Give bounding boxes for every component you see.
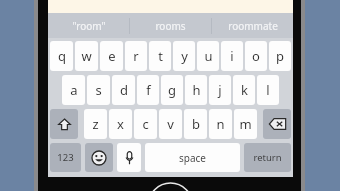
button[interactable]: k — [233, 75, 255, 105]
staticText: p — [276, 47, 284, 65]
button[interactable]: w — [75, 41, 98, 71]
button[interactable]: Emoji — [85, 143, 113, 172]
staticText: j — [218, 81, 222, 99]
button[interactable]: v — [159, 109, 182, 139]
button[interactable]: d — [112, 75, 135, 105]
staticText: g — [168, 81, 176, 99]
staticText: roommate — [228, 19, 278, 33]
button[interactable]: h — [185, 75, 207, 105]
staticText: a — [70, 81, 78, 99]
staticText: r — [133, 47, 139, 65]
button[interactable]: roommate — [212, 13, 293, 38]
button[interactable]: a — [62, 75, 85, 105]
button[interactable]: Backspace — [263, 109, 291, 139]
button[interactable]: Dictation — [117, 143, 141, 172]
staticText: m — [239, 115, 252, 133]
button[interactable]: rooms — [130, 13, 211, 38]
staticText: h — [192, 81, 201, 99]
staticText: y — [181, 47, 188, 65]
staticText: c — [142, 115, 149, 133]
button[interactable]: p — [269, 41, 291, 71]
staticText: return — [253, 151, 282, 164]
staticText: v — [167, 115, 174, 133]
button[interactable]: space — [145, 143, 240, 172]
button[interactable]: f — [137, 75, 159, 105]
button[interactable]: e — [100, 41, 123, 71]
button[interactable]: 123 — [50, 143, 81, 172]
button[interactable]: i — [221, 41, 243, 71]
staticText: rooms — [155, 19, 186, 33]
button[interactable]: g — [161, 75, 183, 105]
button[interactable]: o — [245, 41, 267, 71]
button[interactable]: y — [173, 41, 195, 71]
button[interactable]: m — [234, 109, 257, 139]
staticText: space — [179, 151, 206, 165]
button[interactable]: return — [244, 143, 291, 172]
button[interactable]: z — [84, 109, 107, 139]
staticText: s — [95, 81, 102, 99]
staticText: i — [230, 47, 234, 65]
button[interactable]: c — [134, 109, 157, 139]
staticText: l — [266, 81, 270, 99]
button[interactable]: Shift — [50, 109, 78, 139]
staticText: e — [108, 47, 116, 65]
staticText: f — [146, 81, 151, 99]
button[interactable]: b — [184, 109, 207, 139]
button[interactable]: "room" — [48, 13, 129, 38]
staticText: u — [204, 47, 213, 65]
staticText: t — [158, 47, 163, 65]
staticText: "room" — [72, 19, 106, 33]
button[interactable]: j — [209, 75, 231, 105]
staticText: w — [81, 47, 92, 65]
button[interactable]: s — [87, 75, 110, 105]
staticText: q — [58, 47, 66, 65]
button[interactable]: l — [257, 75, 279, 105]
button[interactable]: r — [125, 41, 147, 71]
button[interactable]: x — [109, 109, 132, 139]
button[interactable]: u — [197, 41, 219, 71]
staticText: x — [117, 115, 124, 133]
staticText: o — [252, 47, 260, 65]
button[interactable]: n — [209, 109, 232, 139]
staticText: d — [120, 81, 128, 99]
staticText: z — [92, 115, 99, 133]
button[interactable]: t — [149, 41, 171, 71]
staticText: n — [216, 115, 225, 133]
button[interactable]: q — [50, 41, 73, 71]
staticText: k — [241, 81, 248, 99]
staticText: b — [192, 115, 200, 133]
staticText: 123 — [57, 151, 74, 164]
